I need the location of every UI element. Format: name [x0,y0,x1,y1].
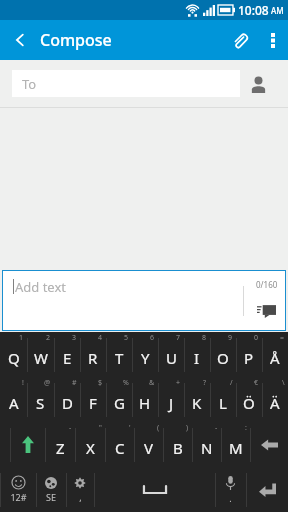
staticText: 6 [150,333,155,343]
staticText: L [219,393,227,413]
staticText: 10:08 [238,2,269,18]
staticText: 8 [202,333,207,343]
button[interactable]: Change language [36,467,66,512]
staticText: Ö [243,393,255,413]
button[interactable]: Add text [2,270,286,331]
staticText: P [244,348,254,368]
button[interactable]: ) [163,422,192,467]
button[interactable]: ? [184,377,210,422]
button[interactable]: # [54,377,80,422]
button[interactable]: \ [262,377,288,422]
staticText: A [9,393,19,413]
button[interactable]: = [262,332,288,377]
staticText: C [115,438,125,458]
button[interactable]: 3 [54,332,80,377]
button[interactable]: Emoji and symbols [0,467,36,512]
staticText: R [88,348,98,368]
staticText: Q [8,348,20,368]
button[interactable]: Send message [246,291,286,331]
staticText: I [194,348,200,368]
button[interactable]: To [12,70,240,97]
button[interactable]: 4 [80,332,106,377]
staticText: - [69,423,72,433]
button[interactable]: & [132,377,158,422]
button[interactable]: " [75,422,105,467]
staticText: Add text [15,278,67,296]
staticText: \ [282,378,285,388]
staticText: V [144,438,154,458]
button[interactable]: Backspace [250,422,288,467]
staticText: U [166,348,177,368]
staticText: $ [98,378,103,388]
button[interactable]: Back [0,20,40,60]
button[interactable]: 1 [0,332,27,377]
staticText: X [86,438,95,458]
staticText: K [192,393,202,413]
button[interactable]: More options [258,20,288,60]
button[interactable]: / [210,377,236,422]
staticText: = [280,333,285,343]
staticText: To [22,75,37,93]
staticText: AM [271,5,284,16]
staticText: € [254,378,259,388]
staticText: N [201,438,213,458]
staticText: H [139,393,151,413]
staticText: % [123,378,129,388]
button[interactable]: Choose contact [240,64,276,104]
button[interactable]: ( [134,422,163,467]
button[interactable]: ' [105,422,134,467]
button[interactable]: - [192,422,221,467]
staticText: 1 [19,333,24,343]
staticText: , [79,491,82,503]
button[interactable]: - [45,422,75,467]
button[interactable]: 5 [106,332,132,377]
staticText: . [229,492,232,504]
staticText: & [149,378,155,388]
button[interactable]: $ [80,377,106,422]
staticText: 0 [254,333,259,343]
button[interactable]: 9 [210,332,236,377]
staticText: O [217,348,229,368]
button[interactable]: 7 [158,332,184,377]
staticText: B [173,438,183,458]
button[interactable]: % [106,377,132,422]
button[interactable]: Attach [220,20,258,60]
button[interactable]: ! [0,377,27,422]
staticText: E [63,348,72,368]
staticText: M [229,438,243,458]
staticText: 0/160 [256,279,278,290]
staticText: + [176,378,181,388]
staticText: / [230,378,233,388]
button[interactable]: 0 [236,332,262,377]
staticText: 4 [98,333,103,343]
button[interactable]: Shift [10,422,45,467]
button[interactable]: Space [94,467,215,512]
button[interactable]: + [158,377,184,422]
staticText: - [215,423,218,433]
staticText: " [99,423,102,433]
staticText: ! [22,378,24,388]
staticText: Ä [270,393,280,413]
staticText: 12# [10,491,27,503]
staticText: @ [44,378,51,388]
button[interactable]: 6 [132,332,158,377]
button[interactable]: : [221,422,250,467]
staticText: ( [157,423,160,433]
button[interactable]: € [236,377,262,422]
staticText: S [36,393,45,413]
button[interactable]: Enter [246,467,288,512]
staticText: 7 [176,333,181,343]
button[interactable]: Settings [66,467,94,512]
button[interactable]: 2 [27,332,54,377]
staticText: G [114,393,125,413]
staticText: D [62,393,73,413]
staticText: ) [186,423,189,433]
button[interactable]: Voice input [215,467,246,512]
staticText: 3 [72,333,77,343]
staticText: 2 [46,333,51,343]
staticText: Å [270,348,280,368]
button[interactable]: 8 [184,332,210,377]
button[interactable]: @ [27,377,54,422]
staticText: J [169,393,174,413]
